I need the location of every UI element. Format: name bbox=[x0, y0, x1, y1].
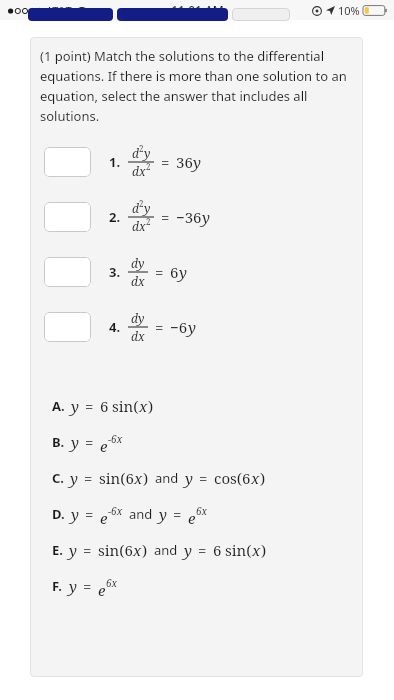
staticText: e bbox=[98, 580, 106, 600]
staticText: dx bbox=[131, 328, 145, 344]
staticText: and bbox=[154, 541, 178, 559]
staticText: y bbox=[71, 396, 79, 416]
staticText: x bbox=[133, 540, 142, 560]
staticText: 2 bbox=[146, 161, 151, 172]
staticText: −6x bbox=[108, 504, 123, 518]
staticText: B. bbox=[52, 433, 65, 451]
staticText: d bbox=[132, 145, 139, 161]
staticText: 36 bbox=[176, 152, 193, 172]
staticText: y bbox=[144, 200, 151, 216]
staticText: = bbox=[83, 540, 92, 560]
staticText: 10% bbox=[338, 3, 360, 18]
staticText: sin(6 bbox=[99, 468, 134, 488]
button[interactable]: A. bbox=[30, 388, 363, 424]
staticText: dx bbox=[131, 273, 145, 289]
staticText: −6x bbox=[108, 432, 123, 446]
staticText: = bbox=[84, 468, 93, 488]
staticText: −36 bbox=[176, 207, 202, 227]
staticText: 1. bbox=[109, 153, 121, 171]
staticText: y bbox=[159, 504, 167, 524]
staticText: ) bbox=[260, 468, 266, 488]
staticText: F. bbox=[52, 577, 63, 595]
button[interactable]: Answer input 4 bbox=[44, 312, 91, 342]
staticText: cos(6 bbox=[214, 468, 251, 488]
staticText: = bbox=[161, 152, 170, 172]
button[interactable]: B. bbox=[30, 424, 363, 460]
staticText: x bbox=[252, 540, 261, 560]
staticText: (1 point) Match the solutions to the dif… bbox=[40, 47, 353, 125]
staticText: y bbox=[71, 504, 79, 524]
staticText: 6x bbox=[106, 576, 118, 590]
button[interactable]: Answer input 1 bbox=[30, 139, 363, 185]
staticText: e bbox=[188, 508, 196, 528]
staticText: dx bbox=[132, 163, 146, 179]
staticText: 2 bbox=[139, 143, 144, 154]
staticText: d bbox=[132, 200, 139, 216]
staticText: y bbox=[179, 262, 187, 282]
staticText: and bbox=[155, 469, 179, 487]
staticText: E. bbox=[52, 541, 63, 559]
staticText: 6 bbox=[213, 540, 222, 560]
staticText: = bbox=[199, 468, 208, 488]
staticText: e bbox=[100, 436, 108, 456]
staticText: C. bbox=[52, 469, 64, 487]
staticText: 6 bbox=[100, 396, 109, 416]
staticText: dy bbox=[131, 310, 145, 326]
staticText: ) bbox=[148, 396, 154, 416]
button[interactable]: Email instructor bbox=[232, 8, 290, 21]
staticText: y bbox=[71, 432, 79, 452]
staticText: AT&T bbox=[46, 3, 72, 18]
button[interactable]: C. bbox=[30, 460, 363, 496]
button[interactable]: Answer input 3 bbox=[30, 249, 363, 295]
button[interactable]: Answer input 3 bbox=[44, 257, 91, 287]
staticText: A. bbox=[52, 397, 65, 415]
staticText: sin(6 bbox=[98, 540, 133, 560]
staticText: dx bbox=[132, 218, 146, 234]
button[interactable]: Answer input 1 bbox=[44, 147, 91, 177]
staticText: y bbox=[69, 540, 77, 560]
staticText: x bbox=[134, 468, 143, 488]
button[interactable]: Answer input 2 bbox=[30, 194, 363, 240]
staticText: 4. bbox=[109, 318, 121, 336]
button[interactable]: Preview answers bbox=[28, 8, 113, 21]
staticText: and bbox=[129, 505, 153, 523]
button[interactable]: F. bbox=[30, 568, 363, 604]
staticText: 2 bbox=[139, 198, 144, 209]
staticText: sin( bbox=[112, 396, 139, 416]
staticText: x bbox=[251, 468, 260, 488]
staticText: = bbox=[83, 576, 92, 596]
staticText: 11:01 AM bbox=[171, 2, 224, 18]
button[interactable]: Answer input 4 bbox=[30, 304, 363, 350]
staticText: y bbox=[144, 145, 151, 161]
staticText: = bbox=[155, 262, 164, 282]
staticText: y bbox=[188, 317, 196, 337]
staticText: ) bbox=[143, 468, 149, 488]
staticText: D. bbox=[52, 505, 65, 523]
staticText: y bbox=[184, 540, 192, 560]
staticText: y bbox=[202, 207, 210, 227]
staticText: dy bbox=[131, 255, 145, 271]
staticText: 3. bbox=[109, 263, 121, 281]
staticText: y bbox=[69, 576, 77, 596]
staticText: = bbox=[155, 317, 164, 337]
staticText: 2. bbox=[109, 208, 121, 226]
staticText: = bbox=[85, 504, 94, 524]
button[interactable]: Answer input 2 bbox=[44, 202, 91, 232]
staticText: y bbox=[70, 468, 78, 488]
button[interactable]: E. bbox=[30, 532, 363, 568]
staticText: sin( bbox=[225, 540, 252, 560]
staticText: = bbox=[161, 207, 170, 227]
staticText: = bbox=[85, 396, 94, 416]
staticText: 6 bbox=[170, 262, 179, 282]
staticText: 2 bbox=[146, 216, 151, 227]
staticText: = bbox=[198, 540, 207, 560]
staticText: = bbox=[173, 504, 182, 524]
staticText: x bbox=[139, 396, 148, 416]
button[interactable]: D. bbox=[30, 496, 363, 532]
staticText: −6 bbox=[170, 317, 188, 337]
staticText: ) bbox=[142, 540, 148, 560]
staticText: ) bbox=[261, 540, 267, 560]
button[interactable]: Submit answers bbox=[117, 8, 228, 21]
staticText: y bbox=[185, 468, 193, 488]
staticText: e bbox=[100, 508, 108, 528]
